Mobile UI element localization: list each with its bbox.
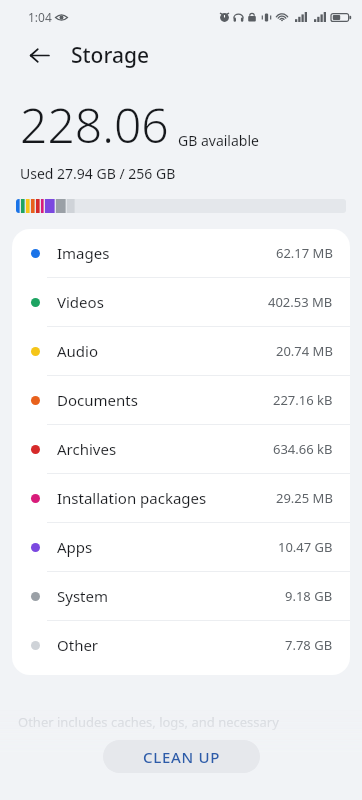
staticText: GB available [178,131,259,150]
staticText: Images [57,243,276,263]
staticText: Videos [57,292,268,312]
button[interactable]: Other [12,621,350,669]
button[interactable]: CLEAN UP [103,740,260,773]
staticText: 634.66 kB [273,440,333,458]
button[interactable]: Apps [12,523,350,571]
staticText: 20.74 MB [276,342,333,360]
button[interactable]: Documents [12,376,350,424]
staticText: System [57,586,285,606]
staticText: Installation packages [57,488,276,508]
button[interactable]: Videos [12,278,350,326]
button[interactable]: Installation packages [12,474,350,522]
button[interactable]: Images [12,229,350,277]
staticText: Audio [57,341,276,361]
staticText: 227.16 kB [273,391,333,409]
staticText: 1:04 [28,9,52,25]
staticText: Documents [57,390,273,410]
staticText: 402.53 MB [268,293,333,311]
button[interactable]: Audio [12,327,350,375]
staticText: 7.78 GB [285,636,333,654]
button[interactable]: Back [22,38,56,72]
button[interactable]: Archives [12,425,350,473]
staticText: Used 27.94 GB / 256 GB [20,164,176,183]
staticText: Archives [57,439,273,459]
staticText: 29.25 MB [276,489,333,507]
staticText: 10.47 GB [278,538,333,556]
staticText: 228.06 [20,92,169,157]
staticText: Storage [71,41,149,70]
staticText: Other includes caches, logs, and necessa… [18,713,279,731]
staticText: 9.18 GB [285,587,333,605]
staticText: Apps [57,537,278,557]
staticText: Other [57,635,285,655]
button[interactable]: System [12,572,350,620]
staticText: CLEAN UP [143,747,221,767]
staticText: 62.17 MB [276,244,333,262]
